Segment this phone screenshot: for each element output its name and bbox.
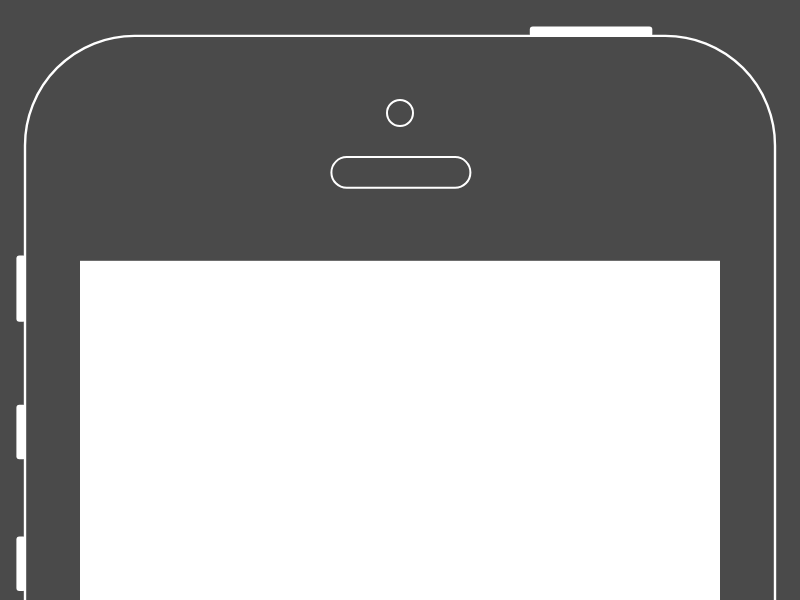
button[interactable]: Power button [530, 26, 653, 37]
button[interactable]: Volume down [16, 537, 26, 592]
button[interactable]: Silent switch [16, 255, 26, 321]
button[interactable]: Volume up [16, 405, 26, 460]
